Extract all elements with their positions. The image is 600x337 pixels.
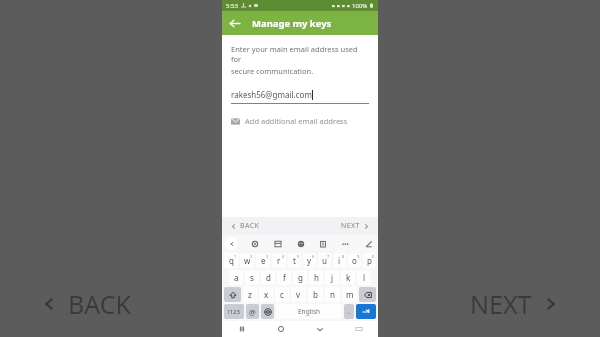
- button[interactable]: Collapse: [225, 237, 238, 250]
- staticText: t: [293, 255, 296, 266]
- staticText: Manage my keys: [252, 17, 332, 30]
- staticText: y: [307, 255, 312, 266]
- staticText: v: [296, 289, 301, 300]
- button[interactable]: w: [240, 253, 254, 268]
- button[interactable]: h: [309, 270, 323, 285]
- button[interactable]: Home: [261, 321, 300, 337]
- button[interactable]: More: [339, 237, 352, 250]
- staticText: o: [352, 255, 357, 266]
- button[interactable]: b: [308, 287, 323, 302]
- button[interactable]: s: [245, 270, 259, 285]
- button[interactable]: Settings: [248, 237, 261, 250]
- staticText: Enter your main email address used for: [231, 44, 369, 64]
- button[interactable]: q: [224, 253, 238, 268]
- staticText: a: [234, 272, 239, 283]
- staticText: q: [229, 255, 234, 266]
- staticText: Add additional email address: [245, 116, 348, 126]
- staticText: u: [322, 255, 327, 266]
- button[interactable]: Handwriting: [362, 237, 375, 250]
- button[interactable]: Add additional email address: [231, 116, 369, 126]
- button[interactable]: c: [275, 287, 289, 302]
- staticText: s: [250, 272, 254, 283]
- staticText: rakesh56@gmail.com: [231, 89, 312, 100]
- staticText: .: [348, 307, 350, 317]
- button[interactable]: Sticker: [271, 237, 284, 250]
- button[interactable]: u: [318, 253, 331, 268]
- button[interactable]: Backspace: [359, 287, 376, 302]
- button[interactable]: Language: [261, 304, 274, 319]
- staticText: b: [313, 289, 318, 300]
- staticText: r: [277, 255, 281, 266]
- button[interactable]: NEXT: [341, 221, 370, 231]
- button[interactable]: Keyboard: [339, 321, 378, 337]
- staticText: 8: [342, 254, 345, 259]
- button[interactable]: n: [325, 287, 340, 302]
- staticText: l: [363, 272, 366, 283]
- staticText: BACK: [68, 287, 132, 321]
- button[interactable]: x: [259, 287, 273, 302]
- staticText: 100%: [352, 2, 368, 10]
- button[interactable]: d: [261, 270, 275, 285]
- button[interactable]: Emoji: [294, 237, 307, 250]
- button[interactable]: j: [325, 270, 339, 285]
- button[interactable]: i: [333, 253, 346, 268]
- staticText: BACK: [240, 221, 260, 231]
- staticText: 2: [250, 254, 253, 259]
- staticText: @: [249, 307, 256, 317]
- staticText: 3: [266, 254, 269, 259]
- staticText: k: [346, 272, 351, 283]
- staticText: 7: [327, 254, 330, 259]
- button[interactable]: BACK: [230, 221, 260, 231]
- staticText: !123: [228, 308, 240, 316]
- staticText: f: [283, 272, 286, 283]
- staticText: n: [330, 289, 335, 300]
- button[interactable]: Clipboard: [316, 237, 329, 250]
- staticText: NEXT: [470, 287, 532, 321]
- staticText: 1: [234, 254, 237, 259]
- staticText: d: [266, 272, 271, 283]
- staticText: w: [244, 255, 251, 266]
- staticText: 0: [372, 254, 375, 259]
- staticText: x: [264, 289, 269, 300]
- button[interactable]: Recents: [222, 321, 261, 337]
- button[interactable]: BACK: [36, 283, 136, 325]
- button[interactable]: e: [256, 253, 270, 268]
- button[interactable]: v: [291, 287, 306, 302]
- staticText: secure communication.: [231, 66, 314, 76]
- staticText: j: [331, 272, 334, 283]
- button[interactable]: @: [246, 304, 259, 319]
- button[interactable]: NEXT: [466, 283, 564, 325]
- staticText: e: [261, 255, 266, 266]
- button[interactable]: f: [277, 270, 291, 285]
- button[interactable]: r: [272, 253, 286, 268]
- button[interactable]: p: [363, 253, 376, 268]
- button[interactable]: z: [243, 287, 257, 302]
- button[interactable]: Hide keyboard: [300, 321, 339, 337]
- button[interactable]: g: [293, 270, 307, 285]
- staticText: z: [248, 289, 252, 300]
- button[interactable]: k: [341, 270, 355, 285]
- staticText: 9: [357, 254, 360, 259]
- button[interactable]: t: [288, 253, 301, 268]
- staticText: i: [338, 255, 341, 266]
- button[interactable]: English: [276, 304, 342, 319]
- staticText: NEXT: [341, 221, 360, 231]
- staticText: c: [280, 289, 284, 300]
- staticText: English: [298, 307, 321, 316]
- button[interactable]: a: [229, 270, 243, 285]
- button[interactable]: .: [344, 304, 354, 319]
- button[interactable]: m: [342, 287, 357, 302]
- button[interactable]: y: [303, 253, 316, 268]
- button[interactable]: !123: [224, 304, 244, 319]
- staticText: m: [346, 289, 354, 300]
- button[interactable]: l: [357, 270, 371, 285]
- staticText: 5: [297, 254, 300, 259]
- staticText: h: [314, 272, 319, 283]
- button[interactable]: Shift: [224, 287, 241, 302]
- staticText: 4: [282, 254, 285, 259]
- button[interactable]: Back: [222, 11, 246, 35]
- staticText: 5:53: [226, 2, 238, 10]
- button[interactable]: Next: [356, 304, 376, 319]
- staticText: g: [298, 272, 303, 283]
- button[interactable]: o: [348, 253, 361, 268]
